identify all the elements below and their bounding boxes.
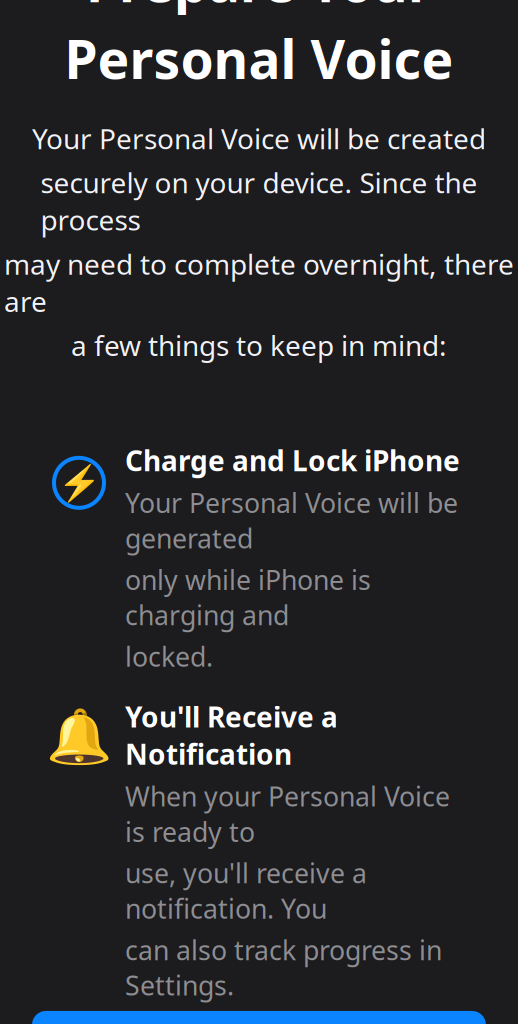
staticText: Your Personal Voice will be created — [32, 120, 486, 157]
staticText: may need to complete overnight, there ar… — [4, 245, 514, 320]
staticText: securely on your device. Since the proce… — [40, 164, 477, 238]
staticText: When your Personal Voice is ready to — [125, 778, 450, 849]
staticText: use, you'll receive a notification. You — [125, 855, 367, 926]
staticText: ⚡ — [57, 463, 100, 503]
staticText: You'll Receive a Notification — [125, 698, 338, 772]
staticText: a few things to keep in mind: — [71, 327, 447, 364]
staticText: can also track progress in Settings. — [125, 932, 442, 1003]
staticText: Personal Voice — [64, 23, 453, 94]
staticText: Prepare Your — [86, 0, 432, 17]
staticText: only while iPhone is charging and — [125, 562, 371, 633]
staticText: Your Personal Voice will be generated — [125, 485, 458, 556]
staticText: locked. — [125, 639, 213, 674]
staticText: 🔔 — [46, 707, 112, 767]
staticText: Charge and Lock iPhone — [125, 442, 460, 479]
button[interactable]: OK — [32, 1011, 486, 1024]
